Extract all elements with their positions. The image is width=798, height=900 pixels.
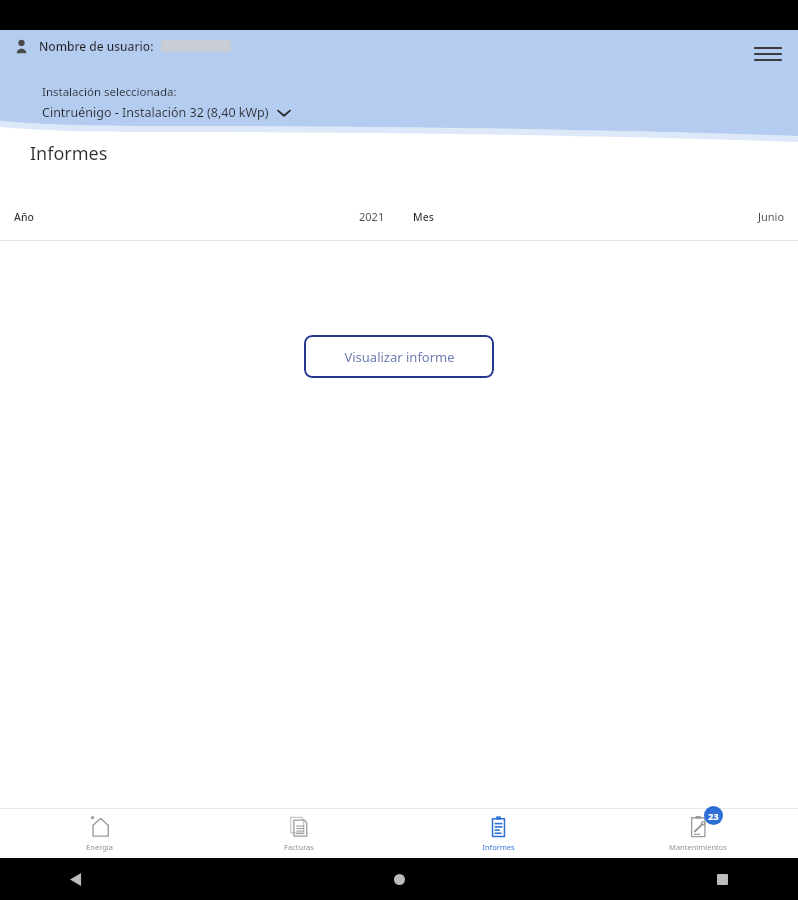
staticText: 2021: [359, 209, 385, 224]
button[interactable]: Inicio: [377, 858, 421, 900]
button[interactable]: Energía: [0, 809, 199, 858]
staticText: Junio: [758, 209, 785, 224]
staticText: Energía: [86, 842, 113, 852]
staticText: Nombre de usuario:: [39, 38, 154, 54]
button[interactable]: Abrir menú: [750, 36, 786, 72]
staticText: Visualizar informe: [344, 348, 455, 366]
staticText: Informes: [482, 842, 515, 852]
staticText: Cintruénigo - Instalación 32 (8,40 kWp): [42, 104, 269, 121]
staticText: Mantenimientos: [669, 842, 727, 852]
button[interactable]: Informes: [398, 809, 598, 858]
staticText: 23: [708, 810, 719, 822]
staticText: Año: [14, 210, 34, 224]
staticText: Mes: [413, 210, 434, 224]
button[interactable]: Cintruénigo - Instalación 32 (8,40 kWp): [42, 104, 290, 121]
button[interactable]: Facturas: [199, 809, 398, 858]
button[interactable]: 23: [598, 809, 798, 858]
staticText: Instalación seleccionada:: [42, 84, 177, 100]
button[interactable]: Recientes: [700, 858, 744, 900]
staticText: Informes: [30, 141, 108, 166]
button[interactable]: Mes: [399, 204, 798, 229]
button[interactable]: Atrás: [54, 858, 98, 900]
button[interactable]: Visualizar informe: [304, 335, 494, 378]
staticText: Facturas: [284, 842, 314, 852]
button[interactable]: Año: [0, 204, 399, 229]
